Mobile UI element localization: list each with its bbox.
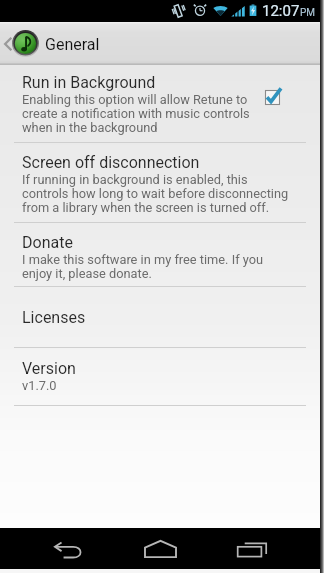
button[interactable]: Run in Background checkbox: [262, 86, 284, 108]
button[interactable]: Screen off disconnection: [0, 143, 320, 222]
button[interactable]: Donate: [0, 223, 320, 286]
button[interactable]: Recent apps: [206, 528, 298, 569]
staticText: v1.7.0: [22, 378, 57, 393]
staticText: General: [45, 35, 100, 54]
button[interactable]: Navigate up: [0, 22, 320, 65]
button[interactable]: Run in Background: [0, 65, 320, 142]
staticText: I make this software in my free time. If…: [22, 252, 280, 281]
staticText: Donate: [22, 233, 73, 252]
staticText: Licenses: [22, 308, 86, 327]
button[interactable]: Back: [22, 528, 114, 569]
staticText: Run in Background: [22, 73, 156, 92]
button[interactable]: Home: [114, 528, 206, 569]
button[interactable]: Version: [0, 348, 320, 405]
staticText: If running in background is enabled, thi…: [22, 172, 294, 215]
staticText: Version: [22, 359, 76, 378]
staticText: PM: [300, 7, 316, 19]
staticText: Screen off disconnection: [22, 153, 200, 172]
staticText: 12:07: [262, 2, 300, 20]
button[interactable]: Licenses: [0, 287, 320, 347]
staticText: Enabling this option will allow Retune t…: [22, 92, 258, 135]
